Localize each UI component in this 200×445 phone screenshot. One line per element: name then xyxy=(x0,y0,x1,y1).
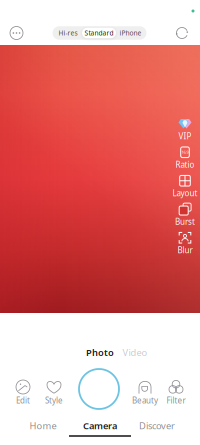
button[interactable]: Camera xyxy=(68,421,132,437)
button[interactable]: Discover xyxy=(125,421,189,437)
staticText: 16:9 xyxy=(181,150,188,155)
staticText: iPhone xyxy=(119,29,141,37)
staticText: VIP xyxy=(178,131,191,141)
button[interactable]: 16:9 xyxy=(171,146,199,168)
staticText: Standard xyxy=(84,29,113,37)
button[interactable]: Photo xyxy=(83,345,117,359)
staticText: Burst xyxy=(175,216,195,227)
staticText: Discover xyxy=(139,419,175,432)
button[interactable]: Filter xyxy=(159,380,193,404)
staticText: Ratio xyxy=(175,159,194,170)
button[interactable]: Hi-res xyxy=(54,28,82,38)
staticText: Blur xyxy=(177,245,192,255)
staticText: Edit xyxy=(16,395,30,406)
button[interactable]: Burst xyxy=(171,203,199,225)
button[interactable]: Video xyxy=(118,345,152,359)
button[interactable]: Take photo xyxy=(79,369,119,409)
button[interactable]: Home xyxy=(11,421,75,437)
button[interactable]: Style xyxy=(37,380,71,404)
button[interactable]: VIP xyxy=(171,118,199,140)
button[interactable]: Edit xyxy=(6,380,40,404)
button[interactable]: Blur xyxy=(171,232,199,254)
button[interactable]: Beauty xyxy=(128,380,162,404)
staticText: Beauty xyxy=(132,395,158,406)
button[interactable]: Layout xyxy=(171,175,199,197)
button[interactable]: Standard xyxy=(82,28,116,38)
staticText: Hi-res xyxy=(58,29,77,37)
staticText: Photo xyxy=(86,346,114,359)
staticText: Camera xyxy=(83,419,117,432)
staticText: Filter xyxy=(166,395,185,406)
button[interactable]: Flip camera xyxy=(171,22,193,44)
staticText: Home xyxy=(29,419,56,432)
button[interactable]: More options xyxy=(5,22,27,44)
button[interactable]: iPhone xyxy=(116,28,145,38)
staticText: Video xyxy=(122,346,147,359)
staticText: Layout xyxy=(172,188,197,198)
staticText: Style xyxy=(45,395,63,406)
